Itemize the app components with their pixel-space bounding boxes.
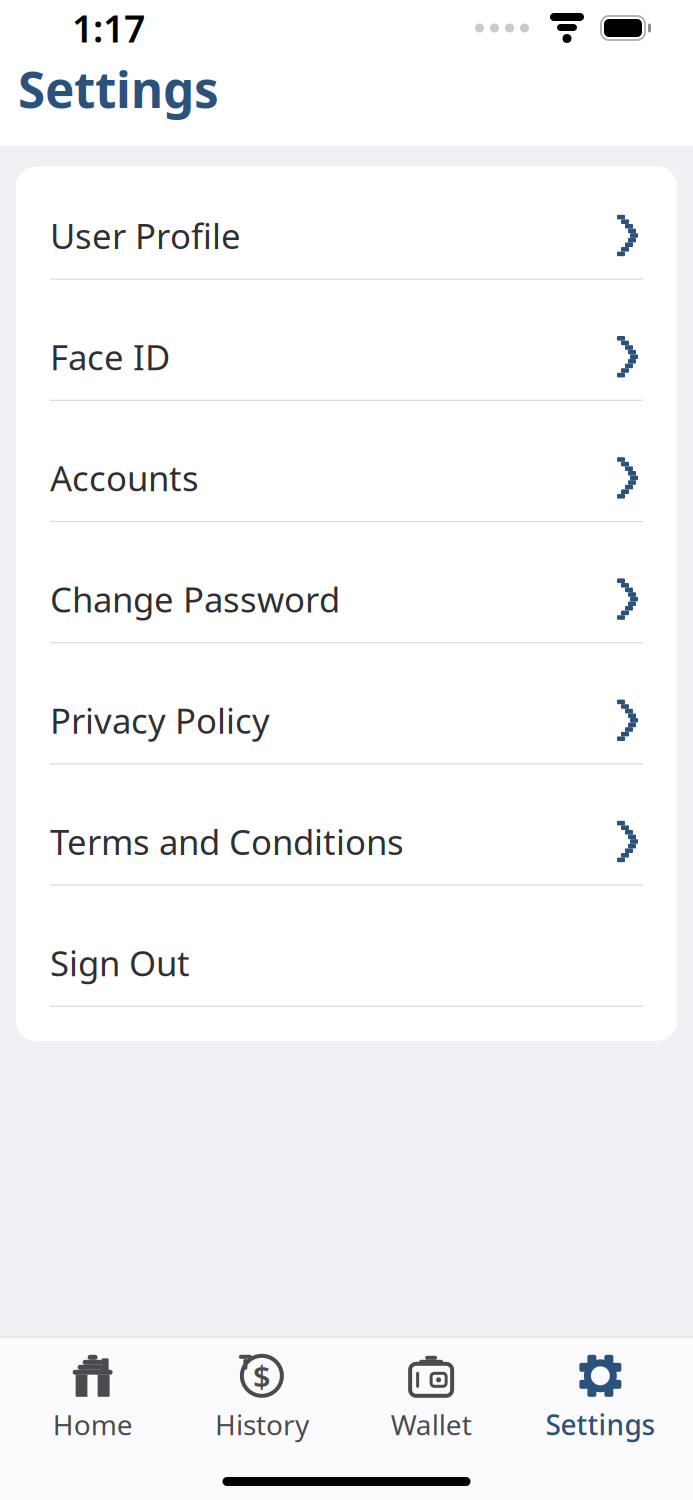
button[interactable]: Accounts: [16, 435, 677, 556]
staticText: Accounts: [50, 455, 199, 501]
button[interactable]: Wallet: [346, 1346, 516, 1449]
staticText: Face ID: [50, 334, 170, 380]
staticText: Home: [53, 1406, 133, 1443]
button[interactable]: Sign Out: [16, 920, 677, 1041]
staticText: User Profile: [50, 212, 241, 258]
button[interactable]: Home: [8, 1346, 177, 1449]
button[interactable]: Face ID: [16, 314, 677, 435]
button[interactable]: Privacy Policy: [16, 677, 677, 798]
staticText: Settings: [545, 1406, 655, 1443]
button[interactable]: Settings: [516, 1346, 685, 1449]
button[interactable]: Change Password: [16, 556, 677, 677]
staticText: Terms and Conditions: [50, 818, 404, 864]
staticText: Privacy Policy: [50, 697, 270, 743]
button[interactable]: $: [177, 1346, 346, 1449]
staticText: $: [253, 1355, 271, 1396]
staticText: Settings: [18, 56, 219, 121]
staticText: Sign Out: [50, 940, 190, 986]
button[interactable]: Terms and Conditions: [16, 798, 677, 920]
button[interactable]: User Profile: [16, 192, 677, 314]
staticText: Change Password: [50, 576, 340, 622]
staticText: Wallet: [391, 1406, 472, 1443]
staticText: 1:17: [72, 3, 145, 53]
staticText: History: [215, 1406, 309, 1443]
